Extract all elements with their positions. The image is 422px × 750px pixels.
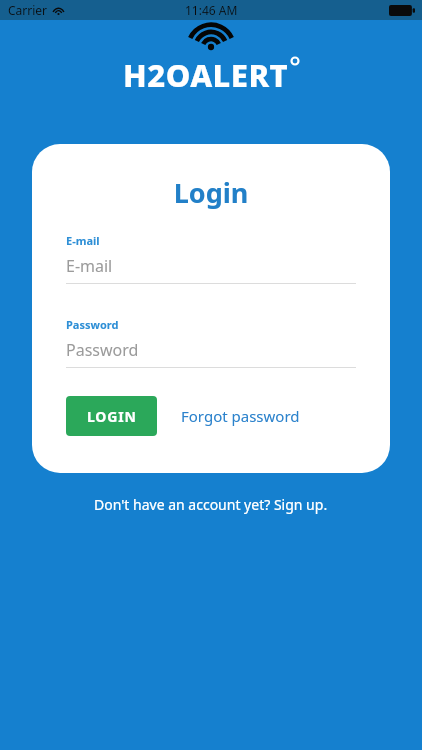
staticText: LOGIN xyxy=(87,407,137,426)
staticText: H2OALERT xyxy=(123,54,289,96)
button[interactable]: Forgot password xyxy=(179,398,302,434)
button[interactable]: Password xyxy=(66,339,356,368)
staticText: E-mail xyxy=(66,255,113,277)
button[interactable]: LOGIN xyxy=(66,396,157,436)
button[interactable]: Don't have an account yet? Sign up. xyxy=(88,491,334,518)
staticText: Don't have an account yet? Sign up. xyxy=(94,495,328,514)
staticText: Login xyxy=(66,174,356,211)
staticText: E-mail xyxy=(66,233,100,248)
staticText: 11:46 AM xyxy=(185,2,238,18)
staticText: Forgot password xyxy=(181,406,300,426)
staticText: Password xyxy=(66,317,119,332)
staticText: Password xyxy=(66,339,139,361)
staticText: Carrier xyxy=(8,2,48,18)
button[interactable]: E-mail xyxy=(66,255,356,284)
